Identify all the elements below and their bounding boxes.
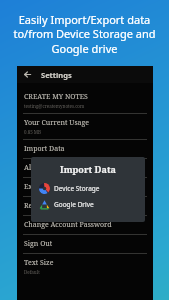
staticText: Google Drive [54,200,94,209]
button[interactable]: Change Account Password [17,216,153,234]
staticText: 0.85 MB [24,129,42,135]
button[interactable]: Always ask export backup [17,159,153,177]
button[interactable]: Text Size [17,254,153,279]
staticText: Export Data [24,182,64,192]
staticText: Your Current Usage [24,118,89,128]
button[interactable]: Device Storage [31,183,145,194]
button[interactable]: CREATE MY NOTES [17,88,153,113]
staticText: Always ask export backup [24,163,112,173]
staticText: Remove Unused tags [24,201,93,211]
staticText: Settings [41,70,72,80]
button[interactable]: Export Data [17,178,153,196]
staticText: Easily Import/Export data to/from Device… [6,12,163,57]
staticText: Sign Out [24,239,53,249]
staticText: Device Storage [54,184,100,193]
staticText: Change Account Password [24,220,112,230]
staticText: Text Size [24,258,54,268]
button[interactable]: Your Current Usage [17,114,153,139]
staticText: Import Data [31,163,145,175]
staticText: Import Data [24,144,65,154]
staticText: testing@createmynotes.com [24,103,85,109]
button[interactable]: Remove Unused tags [17,197,153,215]
button[interactable]: Back [21,68,34,81]
staticText: CREATE MY NOTES [24,92,88,102]
button[interactable]: Import Data [17,140,153,158]
staticText: Default [24,269,40,275]
button[interactable]: Sign Out [17,235,153,253]
button[interactable]: Google Drive [31,199,145,210]
